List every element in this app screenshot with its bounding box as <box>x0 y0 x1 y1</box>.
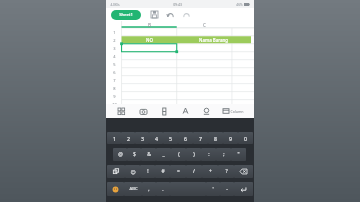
button[interactable]: @ <box>113 148 127 161</box>
staticText: ☺ <box>130 169 136 175</box>
button[interactable]: 9 <box>223 132 238 144</box>
button[interactable]: 2 <box>121 132 135 144</box>
button[interactable]: - <box>220 182 234 196</box>
staticText: NO <box>146 37 153 43</box>
staticText: = <box>177 168 180 175</box>
button[interactable]: Undo <box>166 10 175 19</box>
button[interactable]: 6 <box>178 132 193 144</box>
staticText: 09:43 <box>173 2 182 7</box>
staticText: 6 <box>113 70 116 75</box>
button[interactable]: = <box>170 165 186 178</box>
staticText: 4 <box>155 135 158 142</box>
staticText: 1 <box>113 135 116 142</box>
staticText: 2 <box>127 135 130 142</box>
button[interactable]: 7 <box>193 132 208 144</box>
staticText: Nama Barang <box>199 37 228 43</box>
staticText: # <box>161 168 165 175</box>
staticText: 4 <box>113 54 116 59</box>
staticText: ; <box>223 151 225 158</box>
button[interactable]: 3 <box>135 132 149 144</box>
button[interactable]: Bold <box>159 106 170 117</box>
button[interactable]: ☺ <box>125 165 140 178</box>
button[interactable]: 8 <box>208 132 223 144</box>
staticText: + <box>209 168 212 175</box>
staticText: ? <box>225 168 228 175</box>
button[interactable]: / <box>186 165 202 178</box>
button[interactable]: $ <box>127 148 141 161</box>
button[interactable]: More symbols <box>107 165 125 178</box>
staticText: 9 <box>113 94 116 99</box>
button[interactable]: Align <box>201 106 212 117</box>
staticText: _ <box>162 151 165 158</box>
button[interactable]: Sheet1 <box>111 10 141 20</box>
staticText: 0 <box>244 135 247 142</box>
staticText: / <box>193 168 195 175</box>
staticText: 6 <box>184 135 187 142</box>
button[interactable]: . <box>156 182 170 196</box>
staticText: 8 <box>113 86 116 91</box>
staticText: Column <box>230 109 244 114</box>
staticText: 3 <box>141 135 144 142</box>
staticText: . <box>162 186 164 193</box>
staticText: 4.0K/s <box>110 3 120 7</box>
staticText: 46% <box>236 3 243 7</box>
button[interactable]: ABC <box>124 182 142 196</box>
staticText: $ <box>133 151 136 158</box>
staticText: & <box>147 151 151 158</box>
staticText: - <box>226 186 228 193</box>
staticText: C <box>203 22 206 28</box>
button[interactable]: Emoji <box>107 182 124 196</box>
staticText: , <box>148 186 150 193</box>
staticText: 5 <box>113 62 116 67</box>
button[interactable]: 1 <box>107 132 121 144</box>
button[interactable]: Text color <box>180 106 191 117</box>
staticText: 9 <box>229 135 232 142</box>
staticText: ABC <box>129 186 138 192</box>
staticText: 8 <box>214 135 217 142</box>
button[interactable]: Camera <box>138 106 149 117</box>
button[interactable] <box>170 182 206 196</box>
button[interactable]: # <box>155 165 170 178</box>
button[interactable]: Save <box>150 10 159 19</box>
button[interactable]: 4 <box>149 132 163 144</box>
staticText: 1 <box>113 30 116 35</box>
button[interactable]: ? <box>218 165 234 178</box>
button[interactable]: Column <box>223 108 244 114</box>
button[interactable]: Redo <box>182 10 191 19</box>
staticText: ! <box>147 168 149 175</box>
button[interactable]: & <box>141 148 156 161</box>
staticText: : <box>208 151 210 158</box>
button[interactable]: ( <box>171 148 186 161</box>
staticText: " <box>237 151 240 158</box>
button[interactable]: + <box>202 165 218 178</box>
button[interactable]: ) <box>186 148 201 161</box>
button[interactable]: : <box>201 148 216 161</box>
staticText: B <box>148 22 151 28</box>
button[interactable]: Cells <box>116 106 127 117</box>
staticText: ' <box>212 186 214 193</box>
button[interactable]: , <box>142 182 156 196</box>
staticText: 7 <box>113 78 116 83</box>
staticText: ( <box>178 151 180 158</box>
staticText: ) <box>193 151 195 158</box>
button[interactable]: ; <box>216 148 231 161</box>
button[interactable]: 0 <box>238 132 253 144</box>
staticText: @ <box>118 151 123 158</box>
button[interactable]: 5 <box>163 132 178 144</box>
staticText: 2 <box>113 38 116 43</box>
staticText: Sheet1 <box>119 12 133 18</box>
button[interactable]: Backspace <box>234 165 253 178</box>
button[interactable]: ! <box>140 165 155 178</box>
button[interactable]: _ <box>156 148 171 161</box>
staticText: 3 <box>113 46 116 51</box>
staticText: 5 <box>169 135 172 142</box>
button[interactable]: " <box>231 148 246 161</box>
staticText: 7 <box>199 135 202 142</box>
button[interactable]: ' <box>206 182 220 196</box>
button[interactable]: Enter <box>234 182 253 196</box>
staticText: 10 <box>112 102 117 107</box>
